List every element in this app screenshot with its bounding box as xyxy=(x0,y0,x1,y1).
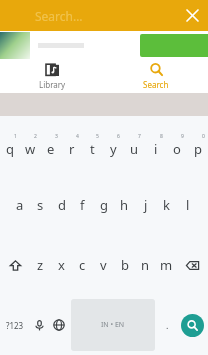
staticText: t xyxy=(90,140,95,158)
button[interactable]: 0 xyxy=(187,116,208,175)
staticText: y xyxy=(110,140,117,158)
button[interactable]: 9 xyxy=(166,116,187,175)
button[interactable]: Clear search xyxy=(177,0,208,31)
button[interactable]: s xyxy=(30,175,51,235)
button[interactable]: Change language xyxy=(49,295,69,355)
other: Backspace xyxy=(186,259,199,272)
staticText: ?123 xyxy=(6,320,24,331)
staticText: h xyxy=(120,196,129,214)
staticText: 9 xyxy=(181,133,184,140)
button[interactable]: v xyxy=(93,235,114,295)
button[interactable]: 6 xyxy=(103,116,124,175)
staticText: . xyxy=(166,319,169,331)
button[interactable]: 3 xyxy=(40,116,61,175)
staticText: 6 xyxy=(117,133,120,140)
other: Shift xyxy=(10,260,21,271)
staticText: z xyxy=(37,256,44,274)
staticText: a xyxy=(16,196,24,214)
staticText: 2 xyxy=(34,133,37,140)
button[interactable]: z xyxy=(30,235,51,295)
button[interactable] xyxy=(0,31,208,60)
staticText: l xyxy=(186,196,190,214)
staticText: 4 xyxy=(76,133,79,140)
button[interactable]: d xyxy=(51,175,72,235)
staticText: 8 xyxy=(160,133,163,140)
button[interactable]: Backspace xyxy=(177,235,208,295)
staticText: m xyxy=(160,256,173,274)
staticText: 1 xyxy=(14,133,17,140)
button[interactable]: Voice input xyxy=(29,295,49,355)
button[interactable]: 7 xyxy=(124,116,145,175)
button[interactable]: m xyxy=(156,235,177,295)
staticText: r xyxy=(69,140,75,158)
staticText: 5 xyxy=(96,133,99,140)
staticText: j xyxy=(144,196,148,214)
button[interactable]: h xyxy=(114,175,135,235)
staticText: o xyxy=(173,140,181,158)
button[interactable]: ?123 xyxy=(0,295,29,355)
staticText: 7 xyxy=(138,133,141,140)
staticText: i xyxy=(154,140,158,158)
button[interactable]: g xyxy=(93,175,114,235)
other: Change language xyxy=(53,319,65,331)
staticText: f xyxy=(80,196,85,214)
staticText: v xyxy=(100,256,107,274)
button[interactable]: 8 xyxy=(145,116,166,175)
other: Voice input xyxy=(34,320,45,331)
staticText: Search xyxy=(143,79,169,90)
staticText: g xyxy=(100,196,108,214)
staticText: u xyxy=(130,140,139,158)
button[interactable]: Library xyxy=(0,60,104,93)
staticText: p xyxy=(194,140,202,158)
staticText: k xyxy=(163,196,170,214)
button[interactable]: j xyxy=(135,175,156,235)
button[interactable]: b xyxy=(114,235,135,295)
button[interactable]: a xyxy=(9,175,30,235)
button[interactable]: n xyxy=(135,235,156,295)
button[interactable]: . xyxy=(157,295,177,355)
staticText: IN • EN xyxy=(101,320,125,330)
staticText: w xyxy=(25,140,36,158)
button[interactable]: x xyxy=(51,235,72,295)
button[interactable]: 5 xyxy=(82,116,103,175)
button[interactable]: 2 xyxy=(20,116,40,175)
button[interactable]: 1 xyxy=(0,116,20,175)
button[interactable]: Search xyxy=(104,60,208,93)
button[interactable]: 4 xyxy=(61,116,82,175)
staticText: c xyxy=(79,256,86,274)
button[interactable]: k xyxy=(156,175,177,235)
staticText: b xyxy=(121,256,129,274)
staticText: 3 xyxy=(55,133,58,140)
staticText: x xyxy=(58,256,65,274)
staticText: 0 xyxy=(202,133,205,140)
staticText: q xyxy=(6,140,14,158)
button[interactable] xyxy=(140,34,208,57)
button[interactable]: c xyxy=(72,235,93,295)
button[interactable]: Shift xyxy=(0,235,30,295)
button[interactable]: IN • EN xyxy=(71,299,155,351)
button[interactable]: Search xyxy=(181,314,204,337)
button[interactable]: l xyxy=(177,175,198,235)
staticText: s xyxy=(37,196,44,214)
staticText: n xyxy=(141,256,150,274)
staticText: Library xyxy=(39,79,66,90)
button[interactable]: f xyxy=(72,175,93,235)
staticText: Search… xyxy=(35,8,83,24)
button[interactable]: Search… xyxy=(0,0,208,31)
staticText: e xyxy=(47,140,55,158)
staticText: d xyxy=(58,196,66,214)
